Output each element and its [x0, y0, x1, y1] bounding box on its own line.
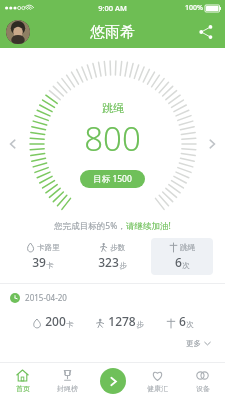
staticText: 请继续加油! — [126, 220, 171, 232]
staticText: 6 — [175, 254, 182, 270]
staticText: 健康汇 — [147, 384, 168, 393]
staticText: 2015-04-20 — [25, 292, 67, 303]
staticText: 9:00 AM — [98, 3, 127, 13]
staticText: 悠雨希 — [90, 23, 135, 42]
button[interactable]: Start — [100, 368, 126, 394]
button[interactable]: 健康汇 — [135, 362, 180, 400]
staticText: 目标 1500 — [93, 173, 132, 185]
staticText: 1278 — [108, 313, 136, 329]
staticText: 323 — [98, 254, 119, 270]
button[interactable]: 卡路里 — [12, 238, 74, 275]
staticText: 步 — [136, 320, 144, 329]
staticText: 次 — [186, 320, 194, 329]
staticText: 跳绳 — [180, 243, 195, 252]
staticText: 封绳榜 — [57, 384, 78, 393]
button[interactable]: 首页 — [0, 362, 45, 400]
staticText: 39 — [32, 254, 46, 270]
button[interactable]: Share — [195, 21, 217, 43]
button[interactable]: Profile — [6, 20, 30, 44]
button[interactable]: 封绳榜 — [45, 362, 90, 400]
staticText: 步数 — [110, 243, 125, 252]
staticText: 首页 — [16, 384, 30, 393]
staticText: 6 — [179, 313, 186, 329]
button[interactable]: 设备 — [180, 362, 225, 400]
staticText: 次 — [182, 261, 190, 270]
staticText: 跳绳 — [102, 101, 124, 115]
staticText: 100% — [185, 3, 203, 13]
staticText: 卡路里 — [37, 243, 60, 252]
button[interactable]: Previous — [2, 133, 24, 155]
staticText: 200 — [45, 313, 66, 329]
staticText: 您完成目标的5%， — [54, 220, 126, 232]
staticText: 卡 — [46, 261, 54, 270]
button[interactable]: 跳绳 — [151, 238, 213, 275]
button[interactable]: Next — [201, 133, 223, 155]
staticText: 800 — [84, 116, 141, 161]
staticText: 更多 — [186, 339, 201, 348]
staticText: 卡 — [66, 320, 74, 329]
button[interactable]: 目标 1500 — [80, 170, 145, 188]
button[interactable]: 步数 — [81, 238, 143, 275]
staticText: 步 — [119, 261, 127, 270]
button[interactable]: 更多 — [186, 339, 215, 350]
staticText: 设备 — [196, 384, 210, 393]
button[interactable]: 2015-04-20 — [0, 284, 225, 350]
